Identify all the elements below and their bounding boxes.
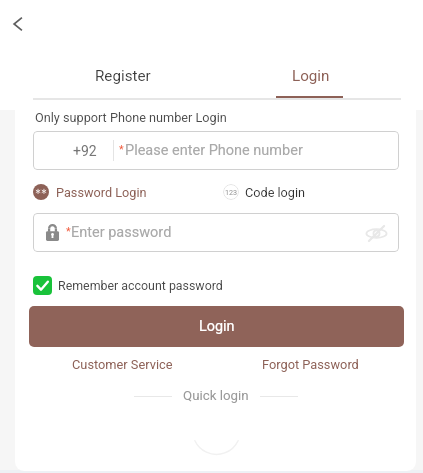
button[interactable]: Show password xyxy=(362,219,390,247)
button[interactable]: Register xyxy=(29,62,217,92)
staticText: 123 xyxy=(225,188,238,196)
button[interactable]: Password Login xyxy=(33,184,147,200)
staticText: * xyxy=(66,225,71,238)
button[interactable]: 123 xyxy=(223,184,306,200)
staticText: * xyxy=(119,143,124,156)
staticText: Quick login xyxy=(183,388,249,404)
button[interactable]: +92 xyxy=(33,131,113,170)
staticText: Register xyxy=(95,67,151,85)
button[interactable]: Back xyxy=(3,9,33,39)
button[interactable]: Login xyxy=(217,62,405,92)
staticText: Login xyxy=(292,67,330,85)
staticText: Only support Phone number Login xyxy=(35,110,227,125)
button[interactable]: Login xyxy=(29,306,404,347)
button[interactable]: Remember account password xyxy=(33,276,223,295)
staticText: Code login xyxy=(245,185,306,200)
staticText: Forgot Password xyxy=(262,357,359,372)
staticText: Password Login xyxy=(56,185,147,200)
staticText: +92 xyxy=(73,143,97,159)
staticText: Please enter Phone number xyxy=(125,142,303,159)
staticText: Customer Service xyxy=(72,357,173,372)
button[interactable]: Forgot Password xyxy=(216,357,404,372)
staticText: Enter password xyxy=(71,224,172,241)
staticText: Remember account password xyxy=(58,278,223,293)
staticText: Login xyxy=(199,318,235,335)
button[interactable]: Customer Service xyxy=(29,357,216,372)
